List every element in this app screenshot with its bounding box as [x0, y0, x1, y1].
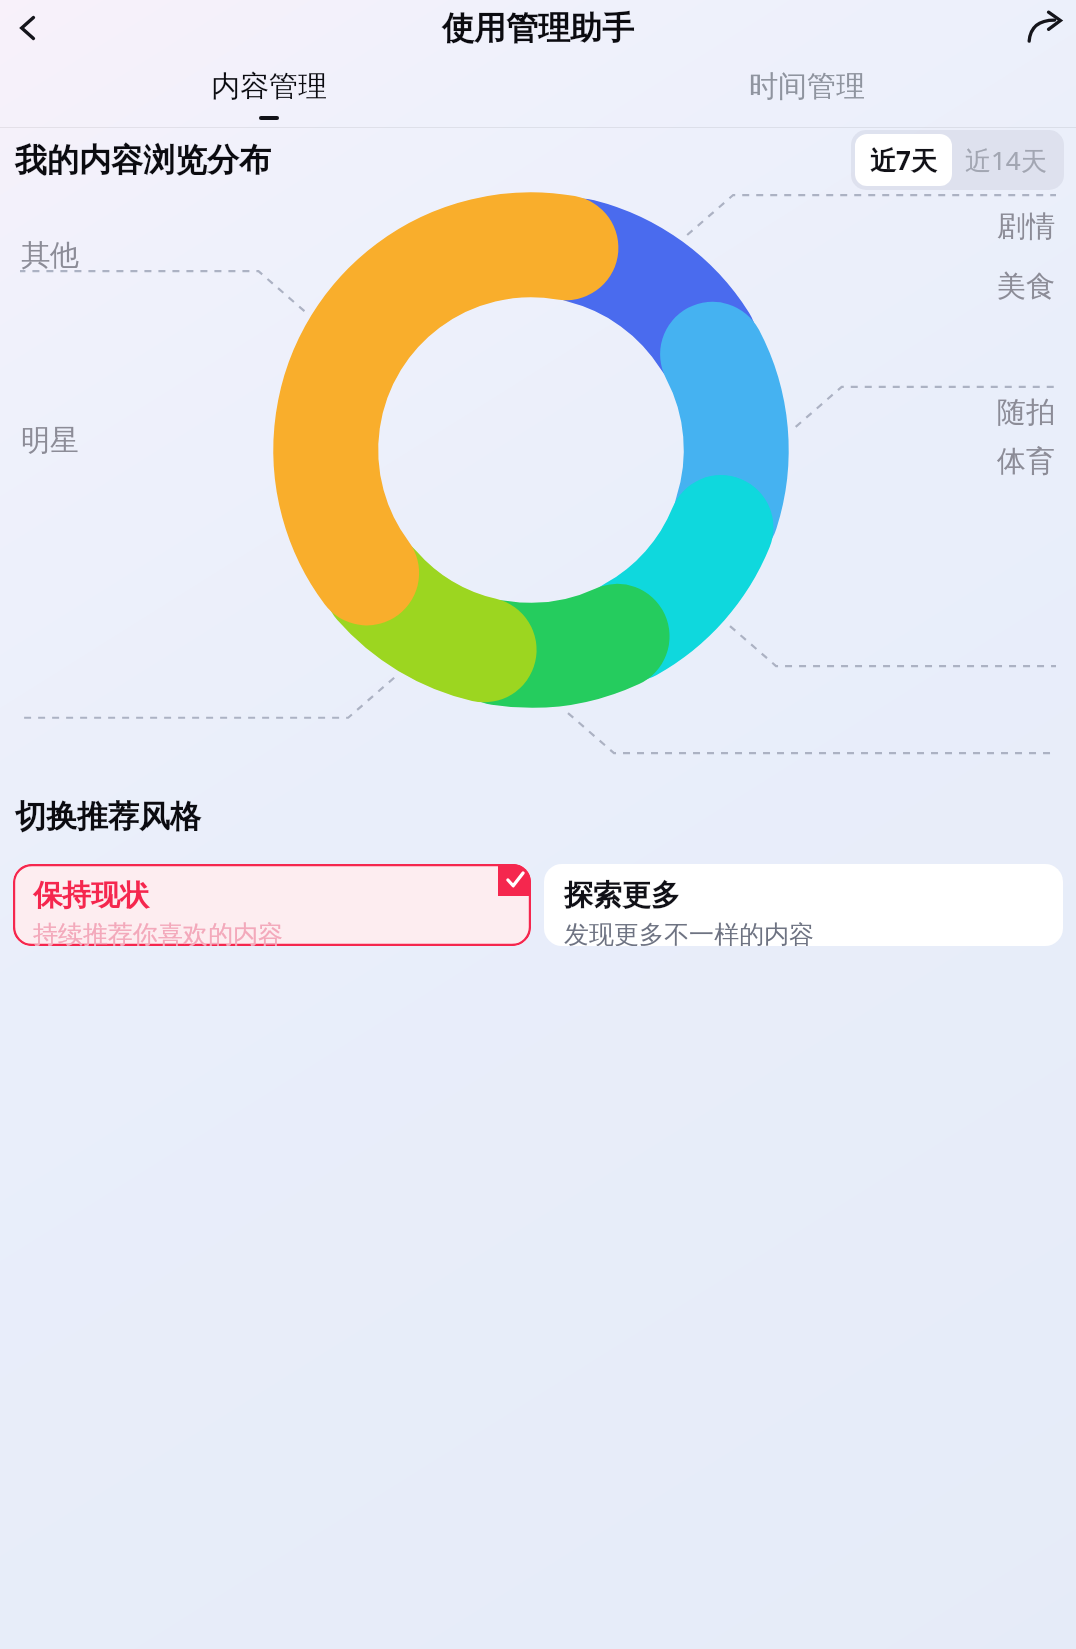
staticText: 体育 — [997, 443, 1055, 480]
staticText: 探索更多 — [564, 877, 680, 914]
staticText: 使用管理助手 — [442, 8, 634, 48]
staticText: 我的内容浏览分布 — [15, 140, 271, 180]
staticText: 时间管理 — [749, 68, 865, 105]
staticText: 内容管理 — [211, 68, 327, 105]
button[interactable]: 保持现状 — [13, 864, 531, 946]
staticText: 其他 — [21, 237, 79, 274]
staticText: 持续推荐你喜欢的内容 — [33, 919, 283, 946]
staticText: 随拍 — [997, 394, 1055, 431]
button[interactable]: 探索更多 — [544, 864, 1063, 946]
staticText: 保持现状 — [33, 877, 149, 914]
staticText: 近7天 — [870, 142, 937, 178]
button[interactable]: 时间管理 — [538, 55, 1076, 128]
staticText: 剧情 — [997, 208, 1055, 245]
button[interactable]: 内容管理 — [0, 55, 538, 128]
button[interactable]: Share — [1023, 6, 1067, 50]
staticText: 切换推荐风格 — [15, 797, 201, 836]
staticText: 近14天 — [965, 142, 1047, 178]
button[interactable]: 近7天 — [855, 134, 952, 186]
staticText: 美食 — [997, 268, 1055, 305]
staticText: 发现更多不一样的内容 — [564, 919, 814, 946]
staticText: 明星 — [21, 422, 79, 459]
button[interactable]: Back — [7, 7, 49, 49]
button[interactable]: 近14天 — [952, 134, 1060, 186]
